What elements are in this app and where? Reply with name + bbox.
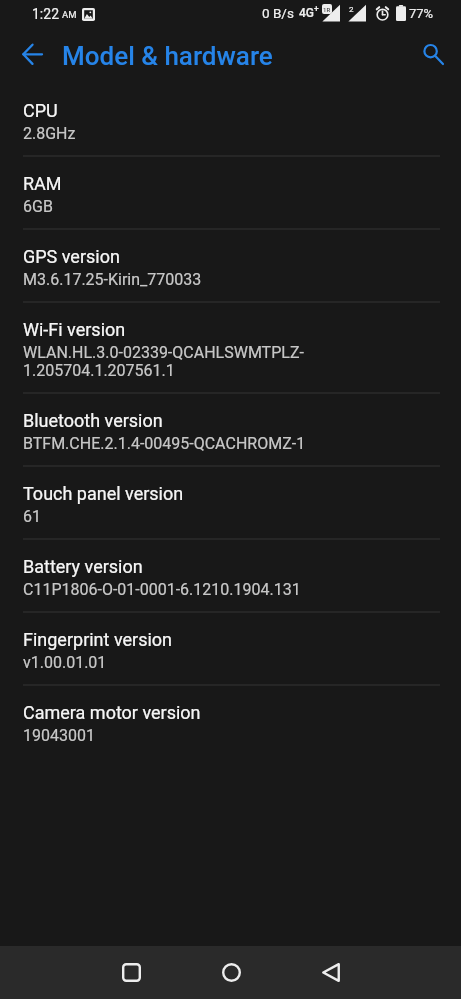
staticText: 61 (23, 508, 41, 526)
staticText: BTFM.CHE.2.1.4-00495-QCACHROMZ-1 (23, 435, 306, 453)
staticText: Battery version (23, 557, 143, 577)
staticText: Wi-Fi version (23, 320, 126, 340)
button[interactable]: Recent apps (81, 946, 181, 999)
button[interactable]: CPU (0, 84, 461, 155)
staticText: M3.6.17.25-Kirin_770033 (23, 271, 202, 289)
button[interactable]: Back (6, 31, 50, 75)
staticText: 6GB (23, 198, 53, 216)
button[interactable]: Camera motor version (0, 686, 461, 757)
staticText: CPU (23, 101, 58, 121)
staticText: 2 (349, 5, 354, 14)
staticText: Fingerprint version (23, 630, 173, 650)
button[interactable]: Fingerprint version (0, 613, 461, 684)
staticText: Camera motor version (23, 703, 201, 723)
staticText: WLAN.HL.3.0-02339-QCAHLSWMTPLZ- 1.205704… (23, 344, 304, 380)
staticText: 77% (409, 6, 434, 21)
button[interactable]: Touch panel version (0, 467, 461, 538)
staticText: Touch panel version (23, 484, 184, 504)
staticText: 2.8GHz (23, 125, 76, 143)
staticText: RAM (23, 174, 62, 194)
staticText: 19043001 (23, 727, 95, 745)
staticText: + (314, 4, 319, 14)
button[interactable]: Wi-Fi version (0, 303, 461, 392)
button[interactable]: GPS version (0, 230, 461, 301)
button[interactable]: Battery version (0, 540, 461, 611)
staticText: 1:22 (32, 6, 59, 22)
staticText: 0 B/s (262, 5, 294, 21)
staticText: v1.00.01.01 (23, 654, 107, 672)
staticText: AM (62, 9, 77, 20)
button[interactable]: Bluetooth version (0, 394, 461, 465)
button[interactable]: Back (281, 946, 381, 999)
button[interactable]: Home (181, 946, 281, 999)
staticText: C11P1806-O-01-0001-6.1210.1904.131 (23, 581, 301, 599)
button[interactable]: Search (412, 33, 456, 77)
staticText: GPS version (23, 247, 120, 267)
button[interactable]: RAM (0, 157, 461, 228)
staticText: Bluetooth version (23, 411, 163, 431)
staticText: 4G (299, 6, 314, 20)
staticText: Model & hardware (62, 41, 273, 71)
staticText: 1R (323, 6, 331, 13)
